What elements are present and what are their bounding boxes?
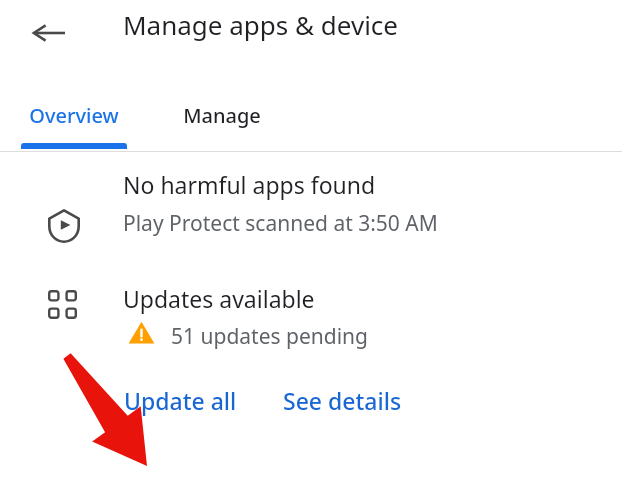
- button[interactable]: Update all: [110, 377, 251, 424]
- button[interactable]: Overview: [0, 84, 148, 152]
- button[interactable]: No harmful apps found: [0, 152, 622, 277]
- staticText: 51 updates pending: [171, 322, 368, 351]
- button[interactable]: Back: [22, 6, 76, 60]
- button[interactable]: Manage: [148, 84, 296, 152]
- staticText: Update all: [124, 385, 237, 416]
- staticText: Manage apps & device: [123, 7, 399, 42]
- staticText: See details: [283, 385, 402, 416]
- button[interactable]: See details: [269, 377, 416, 424]
- staticText: Manage: [183, 102, 261, 129]
- staticText: Play Protect scanned at 3:50 AM: [123, 209, 438, 238]
- staticText: No harmful apps found: [123, 169, 376, 200]
- staticText: Overview: [29, 102, 119, 129]
- staticText: Updates available: [123, 283, 315, 314]
